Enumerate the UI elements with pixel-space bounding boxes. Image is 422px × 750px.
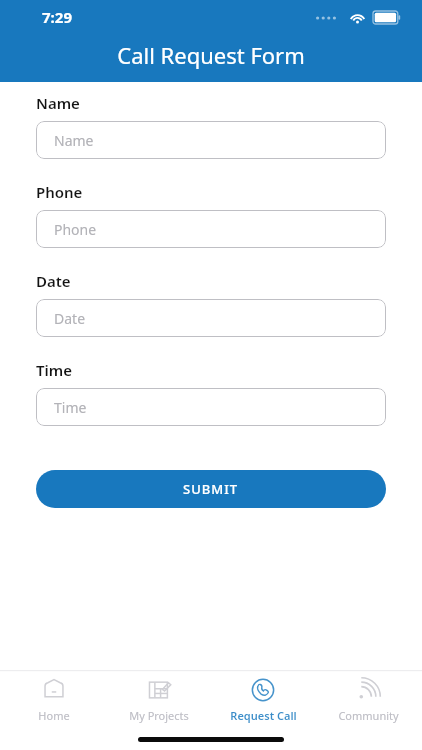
button[interactable]: Home: [4, 676, 104, 723]
staticText: Date: [36, 271, 71, 291]
staticText: Name: [36, 93, 80, 113]
staticText: Time: [54, 398, 87, 417]
button[interactable]: SUBMIT: [36, 470, 386, 508]
button[interactable]: Phone: [36, 210, 386, 248]
staticText: Name: [54, 131, 94, 150]
staticText: Home: [38, 708, 70, 723]
staticText: Request Call: [230, 708, 297, 723]
button[interactable]: My Projects: [109, 676, 209, 723]
button[interactable]: Community: [318, 676, 418, 723]
button[interactable]: Name: [36, 121, 386, 159]
staticText: Time: [36, 360, 72, 380]
staticText: Community: [338, 708, 399, 723]
button[interactable]: Request Call: [213, 676, 313, 723]
staticText: Phone: [36, 182, 83, 202]
staticText: My Projects: [129, 708, 189, 723]
button[interactable]: Date: [36, 299, 386, 337]
staticText: SUBMIT: [183, 480, 239, 498]
staticText: Date: [54, 309, 86, 328]
staticText: 7:29: [42, 7, 72, 27]
staticText: Call Request Form: [117, 40, 305, 70]
staticText: Phone: [54, 220, 97, 239]
button[interactable]: Time: [36, 388, 386, 426]
